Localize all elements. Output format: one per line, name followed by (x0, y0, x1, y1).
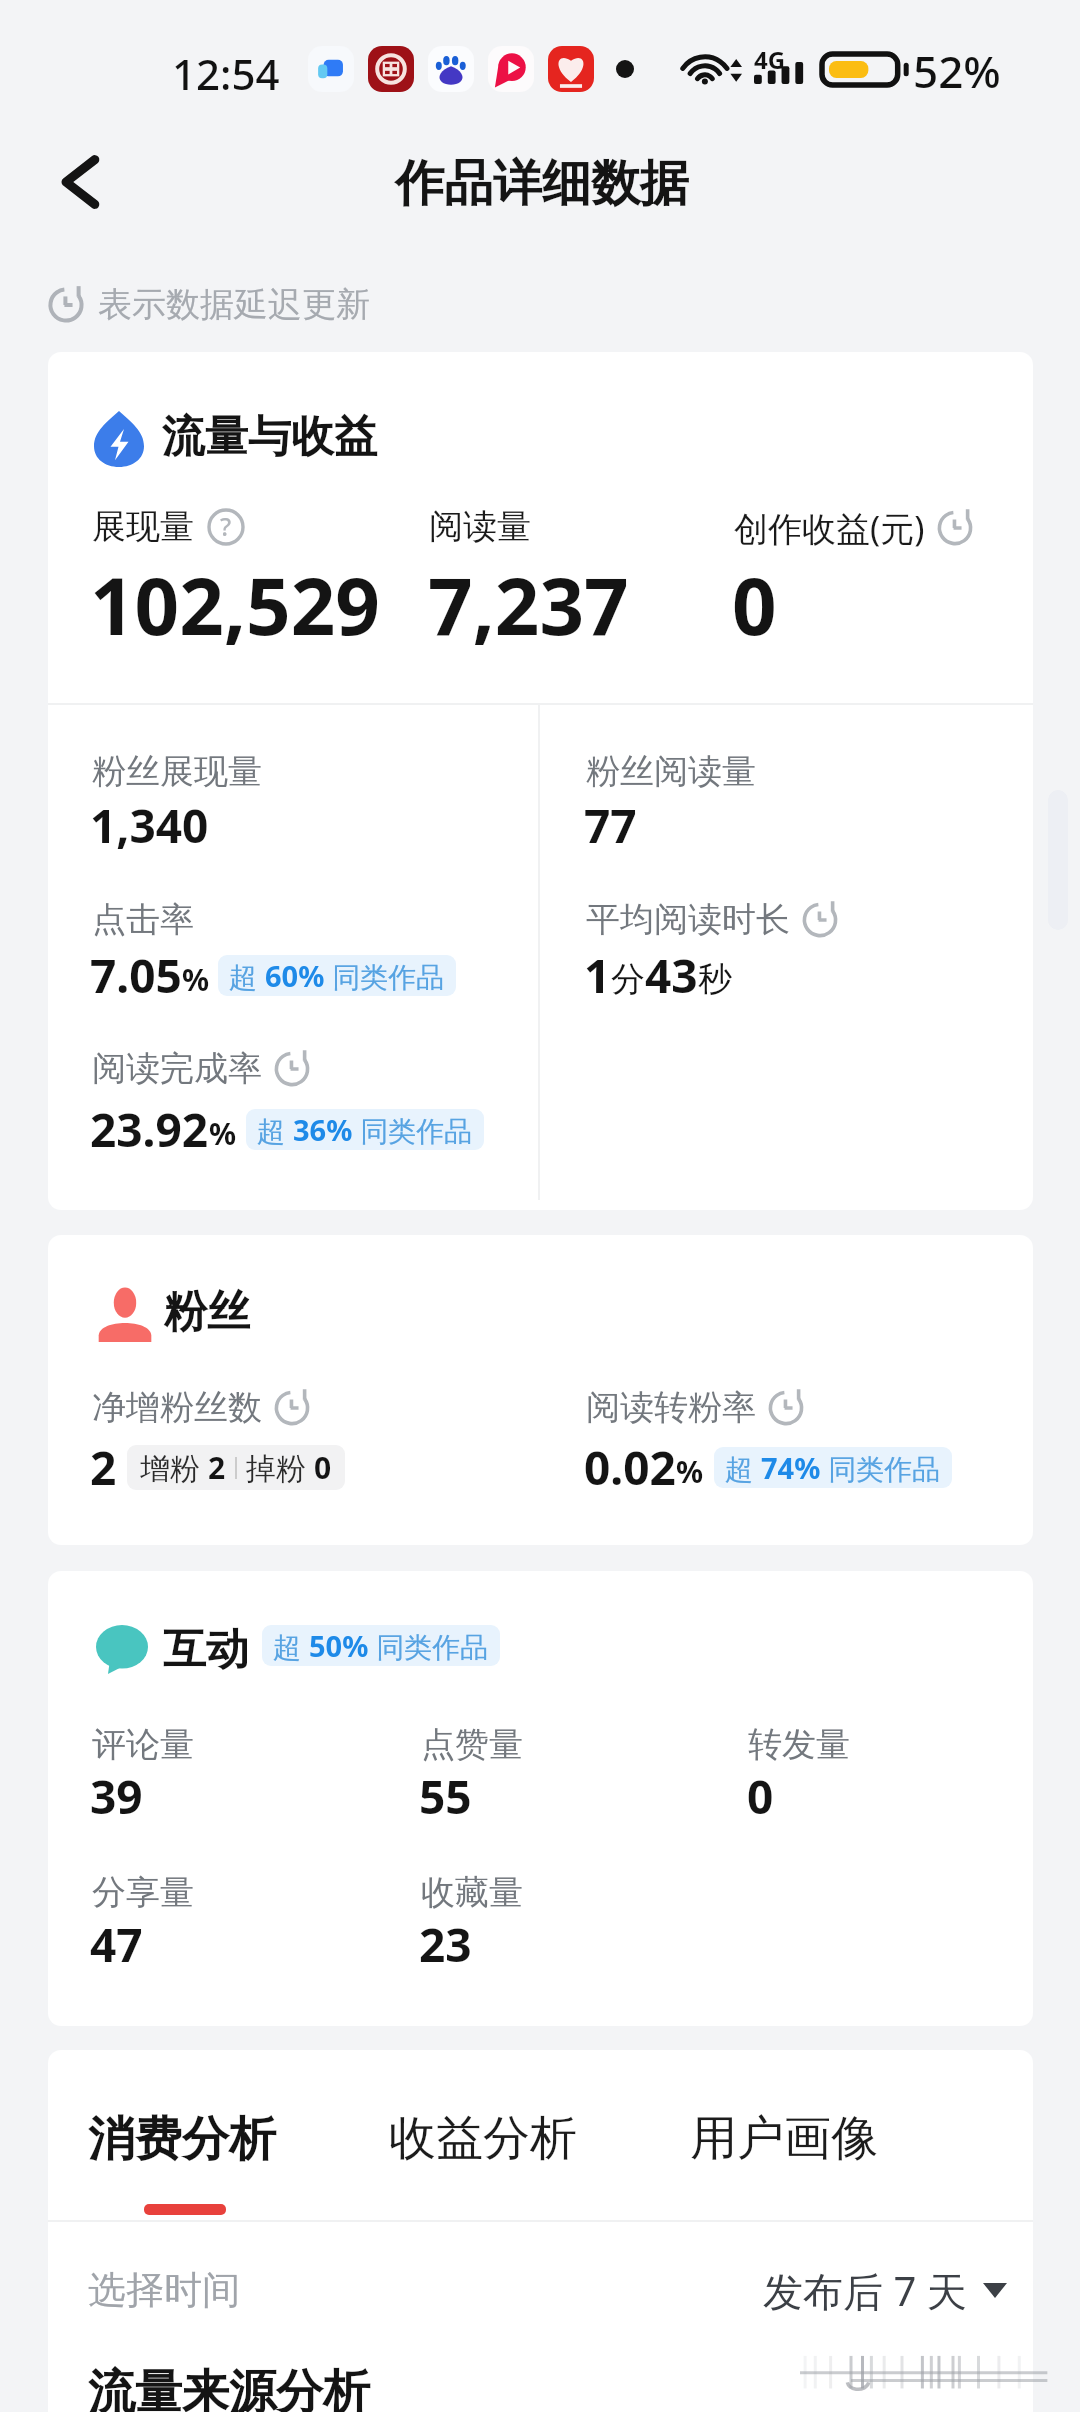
staticText: 0 (732, 552, 777, 658)
staticText: 0.02 (584, 1436, 676, 1499)
staticText: 用户画像 (690, 2109, 878, 2168)
staticText: 阅读量 (429, 505, 531, 548)
staticText: 粉丝展现量 (92, 750, 262, 793)
staticText: 50% (309, 1626, 369, 1665)
staticText: 102,529 (90, 552, 380, 658)
staticText: 0 (314, 1447, 332, 1488)
staticText: 选择时间 (88, 2266, 240, 2314)
staticText: 创作收益(元) (734, 505, 925, 551)
staticText: 收益分析 (389, 2109, 577, 2168)
staticText: 4G (754, 43, 786, 76)
staticText: 47 (90, 1913, 143, 1976)
staticText: 52% (913, 41, 1001, 101)
staticText: 超 (257, 1111, 293, 1149)
staticText: 2 (90, 1436, 117, 1499)
button[interactable]: 收益分析 (389, 2109, 577, 2168)
button[interactable]: 发布后 7 天 (763, 2263, 1007, 2318)
staticText: 74% (761, 1448, 821, 1487)
staticText: 流量来源分析 (88, 2363, 370, 2412)
staticText: 点击率 (92, 898, 194, 941)
staticText: 表示数据延迟更新 (98, 283, 370, 326)
staticText: 同类作品 (369, 1627, 489, 1665)
staticText: 互动 (163, 1623, 249, 1677)
staticText: 净增粉丝数 (92, 1386, 262, 1429)
staticText: 秒 (698, 958, 732, 1001)
staticText: 收藏量 (421, 1871, 523, 1914)
staticText: 作品详细数据 (395, 153, 689, 215)
staticText: 55 (419, 1765, 472, 1828)
staticText: 2 (208, 1447, 226, 1488)
staticText: 平均阅读时长 (586, 898, 790, 941)
button[interactable]: 消费分析 (88, 2110, 276, 2169)
button[interactable]: 用户画像 (690, 2109, 878, 2168)
staticText: 分 (611, 958, 645, 1001)
staticText: 超 (273, 1627, 309, 1665)
staticText: 掉粉 (246, 1447, 314, 1488)
staticText: 同类作品 (325, 957, 445, 995)
staticText: 39 (90, 1765, 143, 1828)
staticText: 同类作品 (353, 1111, 473, 1149)
staticText: 同类作品 (821, 1449, 941, 1487)
staticText: 评论量 (92, 1723, 194, 1766)
staticText: ? (220, 509, 232, 543)
staticText: 展现量 (92, 505, 194, 548)
staticText: 12:54 (172, 45, 280, 102)
staticText: 阅读完成率 (92, 1047, 262, 1090)
staticText: 77 (584, 794, 637, 857)
button[interactable]: Back (42, 142, 122, 222)
staticText: 粉丝阅读量 (586, 750, 756, 793)
staticText: 7,237 (428, 552, 629, 658)
staticText: 增粉 (140, 1447, 208, 1488)
staticText: 超 (229, 957, 265, 995)
staticText: 1 (584, 944, 611, 1007)
staticText: 0 (747, 1765, 774, 1828)
staticText: 1,340 (90, 794, 209, 857)
staticText: 流量与收益 (162, 410, 377, 464)
staticText: 36% (293, 1110, 353, 1149)
staticText: 23.92 (90, 1098, 209, 1161)
staticText: % (209, 1113, 237, 1154)
staticText: 发布后 7 天 (763, 2263, 967, 2318)
staticText: 超 (725, 1449, 761, 1487)
staticText: 转发量 (748, 1723, 850, 1766)
staticText: 分享量 (92, 1871, 194, 1914)
staticText: % (676, 1451, 704, 1492)
staticText: 23 (419, 1913, 472, 1976)
staticText: 点赞量 (421, 1723, 523, 1766)
staticText: 粉丝 (164, 1285, 250, 1339)
staticText: 7.05 (90, 944, 182, 1007)
staticText: 消费分析 (88, 2110, 276, 2169)
staticText: 43 (645, 944, 698, 1007)
staticText: % (182, 959, 210, 1000)
staticText: 阅读转粉率 (586, 1386, 756, 1429)
staticText: 60% (265, 956, 325, 995)
